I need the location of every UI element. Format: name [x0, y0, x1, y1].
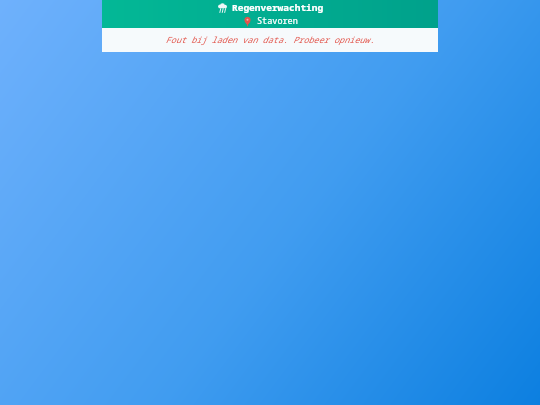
staticText: Fout bij laden van data. Probeer opnieuw…	[165, 34, 375, 46]
button[interactable]: Rain forecast	[102, 0, 438, 28]
other: Rain forecast	[217, 2, 228, 13]
other: Location	[243, 17, 252, 26]
staticText: Stavoren	[257, 15, 298, 27]
button[interactable]: Fout bij laden van data. Probeer opnieuw…	[102, 28, 438, 52]
button[interactable]: Location	[243, 15, 298, 27]
staticText: Regenverwachting	[232, 1, 324, 14]
